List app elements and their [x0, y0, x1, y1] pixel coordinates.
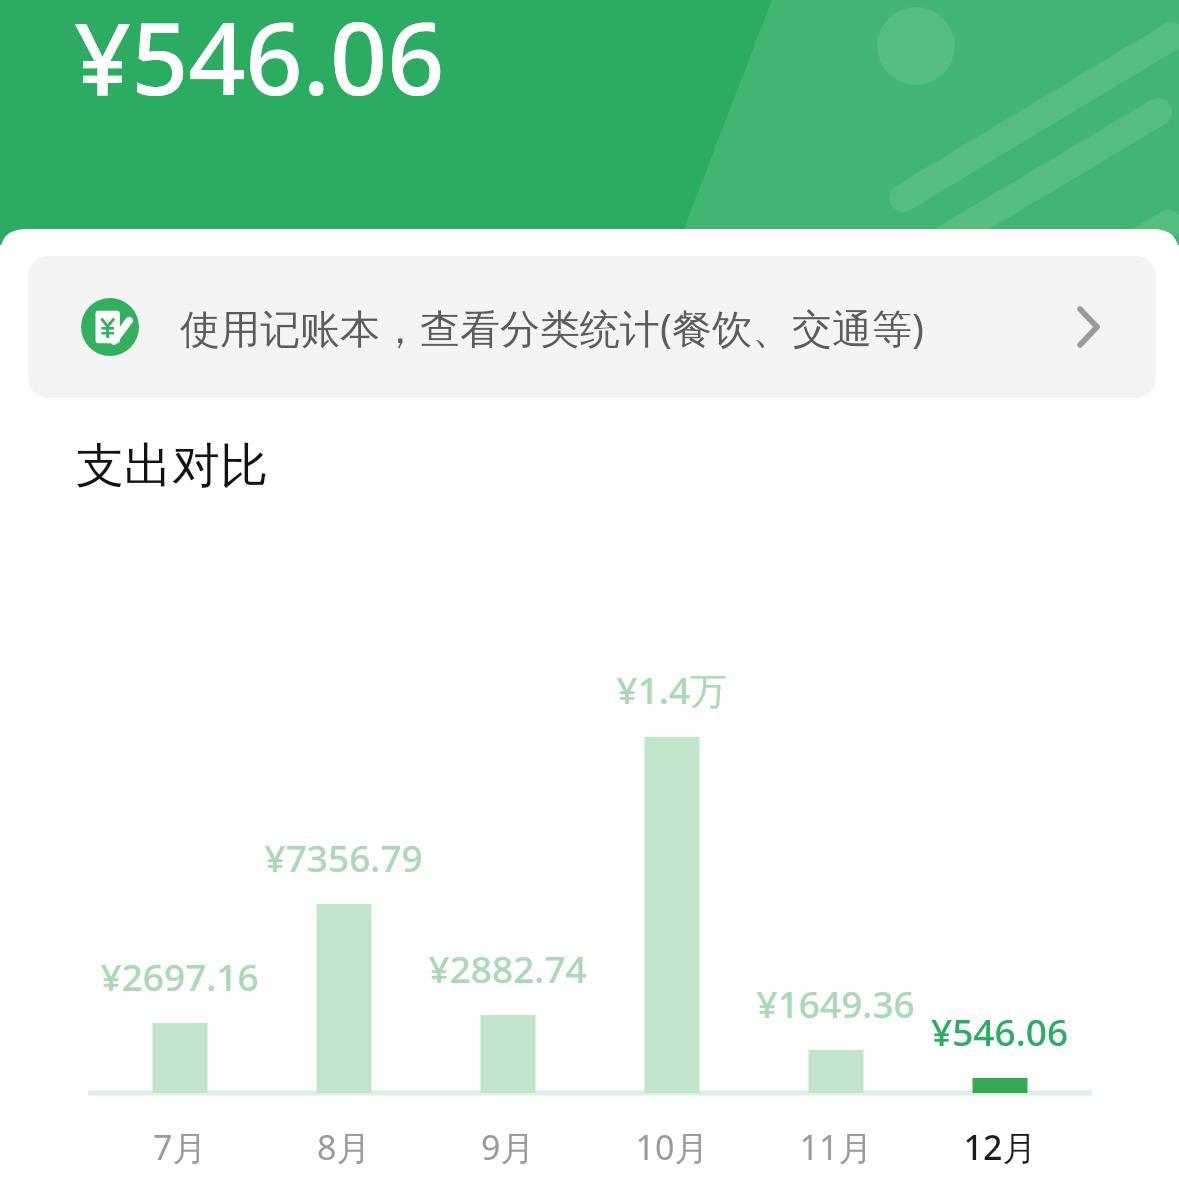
button[interactable]: 使用记账本，查看分类统计(餐饮、交通等) [28, 256, 1156, 398]
